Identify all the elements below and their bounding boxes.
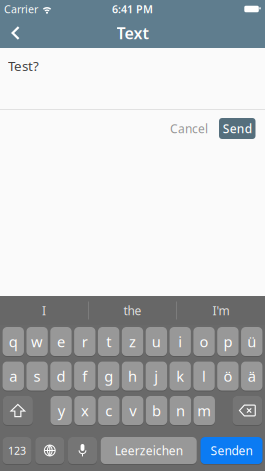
button[interactable]: 123: [2, 437, 31, 465]
staticText: z: [129, 332, 136, 351]
staticText: ä: [248, 366, 256, 386]
button[interactable]: ä: [241, 361, 262, 391]
button[interactable]: Dictation: [68, 437, 97, 465]
button[interactable]: v: [122, 396, 143, 426]
staticText: h: [128, 366, 137, 386]
staticText: s: [34, 366, 41, 386]
staticText: Cancel: [170, 120, 208, 136]
button[interactable]: z: [122, 327, 143, 357]
staticText: a: [9, 366, 17, 386]
button[interactable]: y: [50, 396, 72, 426]
button[interactable]: Senden: [200, 437, 262, 465]
button[interactable]: I'm: [177, 296, 265, 325]
button[interactable]: g: [98, 361, 119, 391]
staticText: ö: [223, 366, 232, 386]
staticText: I'm: [212, 302, 229, 318]
staticText: k: [176, 366, 184, 386]
button[interactable]: h: [122, 361, 143, 391]
button[interactable]: Cancel: [170, 120, 208, 136]
staticText: i: [178, 332, 182, 351]
staticText: q: [9, 332, 18, 351]
staticText: Leerzeichen: [115, 442, 183, 458]
staticText: p: [223, 332, 232, 351]
button[interactable]: s: [26, 361, 48, 391]
staticText: e: [57, 332, 65, 351]
button[interactable]: j: [146, 361, 167, 391]
staticText: y: [58, 401, 65, 420]
button[interactable]: m: [193, 396, 215, 426]
button[interactable]: p: [217, 327, 239, 357]
button[interactable]: n: [170, 396, 191, 426]
staticText: w: [31, 332, 43, 351]
button[interactable]: t: [98, 327, 119, 357]
button[interactable]: d: [50, 361, 72, 391]
button[interactable]: Leerzeichen: [101, 437, 197, 465]
staticText: o: [199, 332, 208, 351]
button[interactable]: the: [89, 296, 176, 325]
staticText: ü: [247, 332, 256, 351]
staticText: m: [197, 401, 211, 420]
staticText: d: [56, 366, 65, 386]
button[interactable]: w: [26, 327, 48, 357]
staticText: 123: [8, 443, 26, 458]
staticText: I: [42, 302, 46, 318]
staticText: the: [123, 302, 141, 318]
staticText: v: [129, 401, 136, 420]
button[interactable]: a: [2, 361, 24, 391]
button[interactable]: I: [0, 296, 88, 325]
staticText: c: [105, 401, 112, 420]
button[interactable]: q: [2, 327, 24, 357]
button[interactable]: Shift: [3, 396, 33, 426]
button[interactable]: l: [193, 361, 215, 391]
button[interactable]: ü: [241, 327, 262, 357]
staticText: r: [82, 332, 88, 351]
staticText: f: [82, 366, 87, 386]
button[interactable]: o: [193, 327, 215, 357]
button[interactable]: e: [50, 327, 72, 357]
button[interactable]: Back: [0, 18, 20, 48]
button[interactable]: c: [98, 396, 119, 426]
staticText: Text: [116, 22, 148, 44]
staticText: Senden: [210, 442, 252, 458]
button[interactable]: r: [74, 327, 95, 357]
button[interactable]: f: [74, 361, 95, 391]
staticText: t: [106, 332, 111, 351]
staticText: Send: [223, 120, 252, 136]
staticText: x: [81, 401, 89, 420]
staticText: 6:41 PM: [112, 2, 153, 16]
button[interactable]: Send: [219, 118, 255, 139]
button[interactable]: Delete: [232, 396, 262, 426]
staticText: Carrier: [4, 2, 38, 16]
button[interactable]: b: [146, 396, 167, 426]
staticText: j: [154, 366, 158, 386]
staticText: l: [202, 366, 206, 386]
staticText: n: [176, 401, 185, 420]
staticText: b: [152, 401, 161, 420]
button[interactable]: i: [169, 327, 191, 357]
button[interactable]: Next keyboard: [35, 437, 64, 465]
button[interactable]: k: [169, 361, 191, 391]
button[interactable]: x: [74, 396, 96, 426]
staticText: u: [152, 332, 161, 351]
button[interactable]: u: [146, 327, 167, 357]
button[interactable]: ö: [217, 361, 239, 391]
staticText: Test?: [8, 57, 39, 75]
staticText: g: [104, 366, 113, 386]
